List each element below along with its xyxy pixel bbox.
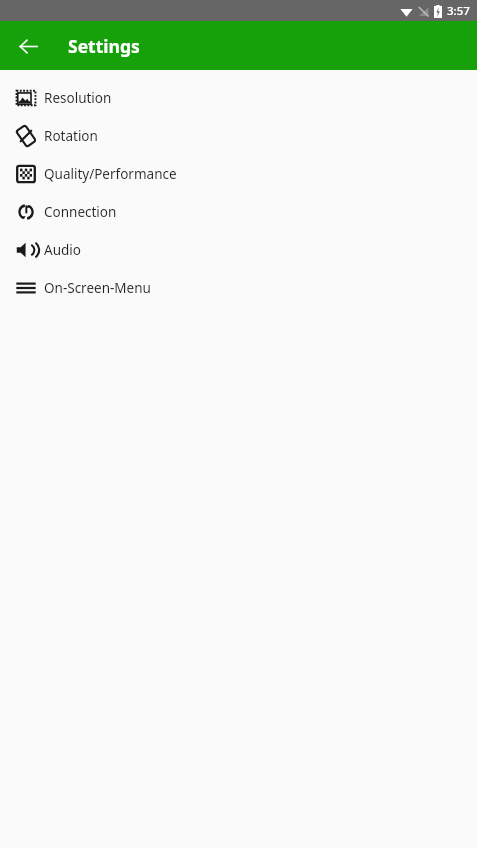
staticText: Settings <box>68 34 140 58</box>
staticText: Quality/Performance <box>44 165 177 183</box>
staticText: On-Screen-Menu <box>44 279 151 297</box>
staticText: Audio <box>44 241 81 259</box>
button[interactable]: Back <box>12 30 44 62</box>
staticText: Resolution <box>44 89 112 107</box>
button[interactable]: On-Screen-Menu <box>0 269 477 307</box>
staticText: 3:57 <box>447 3 470 19</box>
staticText: Connection <box>44 203 117 221</box>
button[interactable]: Resolution <box>0 79 477 117</box>
button[interactable]: Rotation <box>0 117 477 155</box>
button[interactable]: Quality/Performance <box>0 155 477 193</box>
staticText: Rotation <box>44 127 98 145</box>
button[interactable]: Connection <box>0 193 477 231</box>
button[interactable]: Audio <box>0 231 477 269</box>
